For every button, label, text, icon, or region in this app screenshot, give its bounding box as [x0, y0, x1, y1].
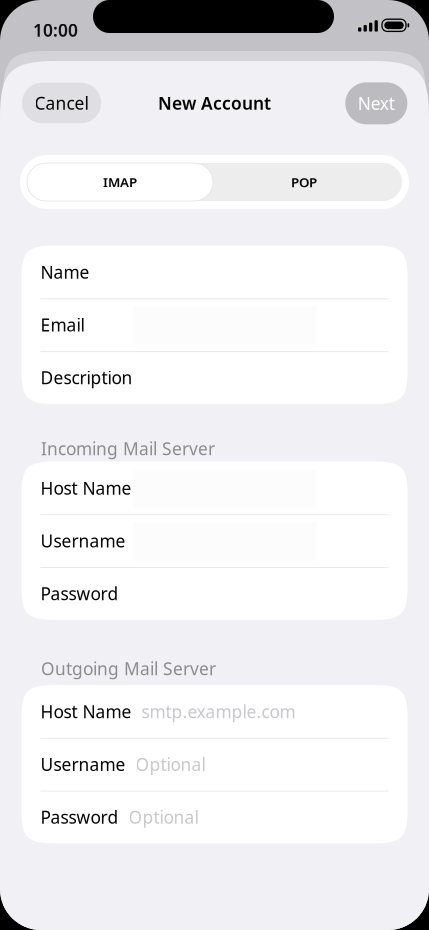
staticText: Name: [40, 260, 89, 283]
staticText: Description: [40, 366, 132, 389]
button[interactable]: Host Name: [21, 685, 407, 738]
staticText: Optional: [135, 753, 205, 776]
button[interactable]: Username: [21, 514, 407, 567]
staticText: Email: [40, 313, 84, 336]
staticText: Cancel: [35, 91, 89, 114]
button[interactable]: Next: [345, 82, 407, 124]
staticText: Password: [40, 805, 118, 828]
staticText: Password: [40, 582, 118, 605]
button[interactable]: IMAP: [27, 163, 213, 201]
staticText: Incoming Mail Server: [41, 437, 215, 460]
staticText: Host Name: [40, 700, 131, 723]
staticText: smtp.example.com: [141, 700, 295, 723]
staticText: POP: [291, 173, 317, 191]
button[interactable]: Password: [21, 567, 407, 620]
button[interactable]: Cancel: [22, 83, 101, 123]
staticText: Host Name: [40, 476, 131, 499]
staticText: Username: [40, 753, 125, 776]
staticText: New Account: [158, 91, 271, 114]
button[interactable]: Password: [21, 791, 407, 843]
staticText: Next: [358, 92, 395, 115]
staticText: Outgoing Mail Server: [41, 657, 216, 680]
staticText: Optional: [128, 805, 198, 828]
button[interactable]: POP: [213, 163, 395, 201]
staticText: Username: [40, 529, 125, 552]
staticText: IMAP: [103, 173, 137, 191]
button[interactable]: Email: [21, 298, 407, 351]
button[interactable]: Description: [21, 351, 407, 404]
button[interactable]: Name: [21, 246, 407, 298]
button[interactable]: Host Name: [21, 461, 407, 514]
button[interactable]: Username: [21, 738, 407, 791]
staticText: 10:00: [33, 18, 78, 41]
